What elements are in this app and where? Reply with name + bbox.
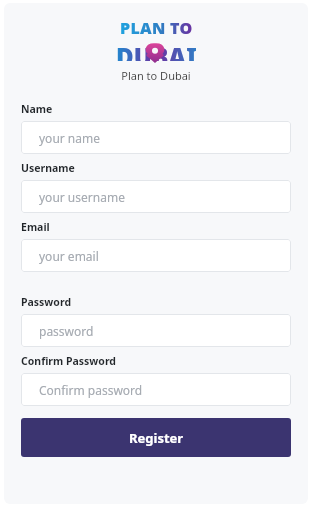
- staticText: Register: [129, 429, 184, 447]
- button[interactable]: your email: [21, 239, 291, 272]
- button[interactable]: your name: [21, 121, 291, 154]
- button[interactable]: Confirm password: [21, 373, 291, 406]
- staticText: Plan to Dubai: [21, 68, 291, 83]
- button[interactable]: password: [21, 314, 291, 347]
- staticText: your email: [39, 248, 99, 264]
- staticText: DUBAI: [116, 40, 197, 61]
- button[interactable]: Register: [21, 418, 291, 457]
- staticText: password: [39, 323, 94, 339]
- staticText: Email: [21, 220, 50, 234]
- staticText: PLAN TO: [120, 17, 193, 39]
- staticText: Name: [21, 102, 53, 116]
- staticText: your username: [39, 189, 125, 205]
- other: Plan to Dubai logo: [113, 17, 199, 61]
- staticText: your name: [39, 130, 101, 146]
- staticText: Confirm password: [39, 382, 143, 398]
- staticText: Username: [21, 161, 75, 175]
- staticText: Password: [21, 295, 72, 309]
- button[interactable]: your username: [21, 180, 291, 213]
- staticText: Confirm Password: [21, 354, 117, 368]
